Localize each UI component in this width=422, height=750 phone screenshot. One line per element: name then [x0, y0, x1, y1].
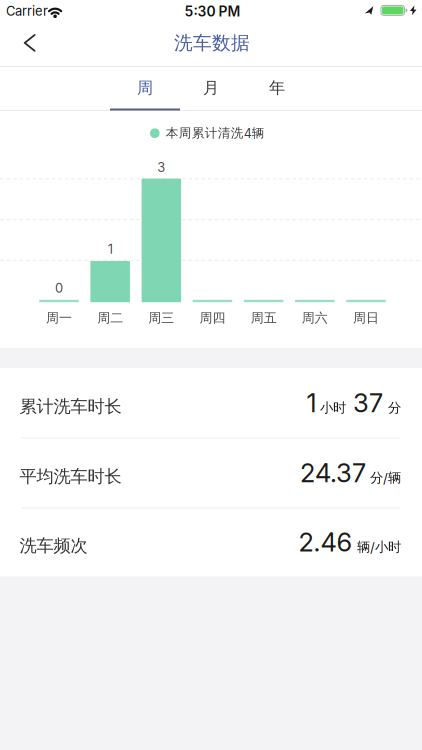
- staticText: 分/辆: [370, 469, 401, 486]
- staticText: 1: [306, 387, 316, 418]
- staticText: 1: [108, 241, 113, 257]
- staticText: 周一: [46, 310, 72, 326]
- staticText: 周二: [97, 310, 123, 326]
- staticText: 分: [388, 399, 401, 416]
- staticText: 洗车频次: [19, 535, 87, 557]
- staticText: 2.46: [298, 527, 352, 558]
- staticText: 周三: [148, 310, 174, 326]
- staticText: 累计洗车时长: [19, 396, 121, 417]
- staticText: 周: [137, 78, 153, 98]
- staticText: 月: [203, 78, 219, 98]
- staticText: 年: [269, 78, 285, 98]
- staticText: 周五: [251, 310, 277, 326]
- staticText: 3: [157, 159, 165, 175]
- staticText: 周四: [199, 310, 225, 326]
- staticText: 平均洗车时长: [19, 466, 121, 487]
- staticText: 辆/小时: [357, 539, 401, 555]
- staticText: 0: [55, 280, 63, 296]
- staticText: 洗车数据: [174, 31, 250, 55]
- staticText: 5:30 PM: [184, 3, 240, 20]
- staticText: 周日: [353, 310, 379, 326]
- staticText: 37: [353, 387, 383, 418]
- staticText: 周六: [302, 310, 328, 326]
- staticText: Carrier: [6, 3, 48, 19]
- staticText: 24.37: [300, 457, 366, 488]
- staticText: 本周累计清洗4辆: [166, 125, 265, 141]
- staticText: 小时: [320, 399, 346, 416]
